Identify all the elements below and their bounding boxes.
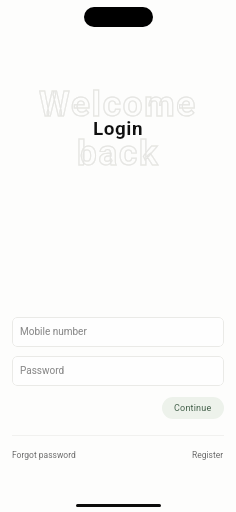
button[interactable]: Register — [192, 450, 224, 460]
button[interactable]: Forgot password — [12, 450, 76, 460]
staticText: Forgot password — [12, 450, 76, 460]
staticText: Mobile number — [20, 326, 87, 338]
button[interactable]: Password — [12, 356, 224, 386]
button[interactable]: Continue — [162, 397, 224, 419]
staticText: Login — [93, 117, 144, 139]
button[interactable]: Mobile number — [12, 317, 224, 347]
staticText: Password — [20, 365, 65, 377]
staticText: Register — [192, 450, 224, 460]
staticText: Continue — [174, 403, 212, 414]
